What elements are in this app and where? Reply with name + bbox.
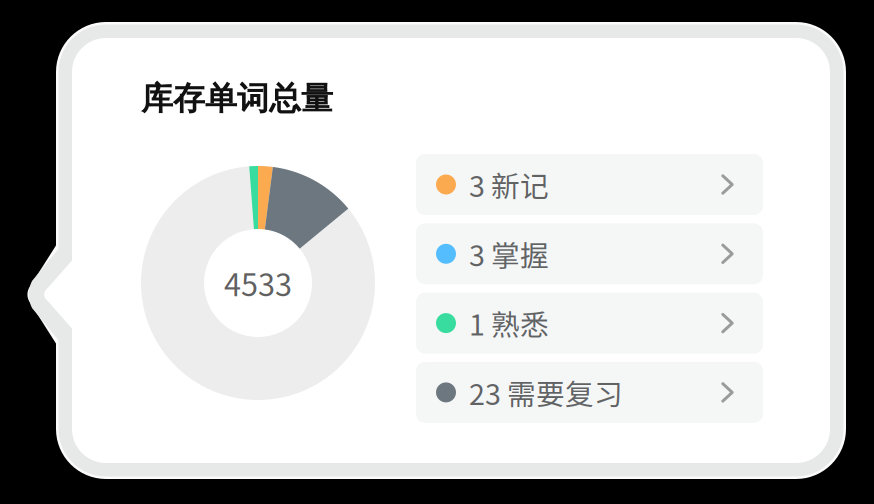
button[interactable]: 3 掌握 — [416, 223, 763, 284]
staticText: 3 掌握 — [469, 233, 549, 274]
staticText: 23 需要复习 — [469, 372, 623, 413]
staticText: 4533 — [224, 261, 292, 305]
button[interactable]: 3 新记 — [416, 154, 763, 215]
staticText: 3 新记 — [469, 164, 549, 205]
button[interactable]: 23 需要复习 — [416, 362, 763, 423]
button[interactable]: 1 熟悉 — [416, 293, 763, 354]
staticText: 1 熟悉 — [469, 302, 549, 344]
staticText: 库存单词总量 — [141, 78, 333, 119]
